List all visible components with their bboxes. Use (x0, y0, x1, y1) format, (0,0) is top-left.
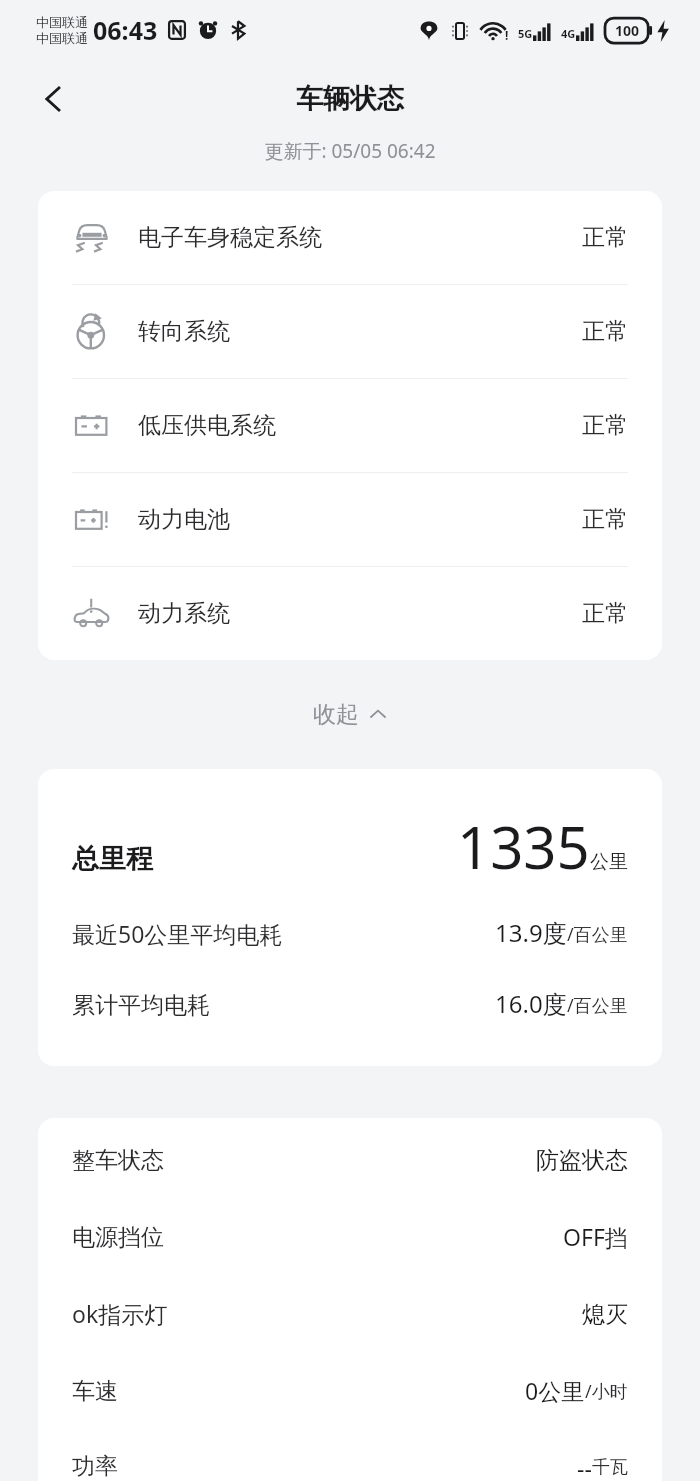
button[interactable]: ok指示灯 (72, 1298, 628, 1329)
staticText: 车辆状态 (296, 82, 404, 116)
staticText: 车速 (72, 1377, 118, 1406)
staticText: 正常 (582, 317, 628, 346)
staticText: 正常 (582, 505, 628, 534)
staticText: 熄灭 (582, 1300, 628, 1329)
staticText: 动力系统 (138, 599, 230, 628)
staticText: 总里程 (72, 842, 153, 876)
button[interactable]: Back (26, 71, 82, 127)
staticText: /百公里 (567, 922, 628, 947)
staticText: 低压供电系统 (138, 411, 276, 440)
staticText: 正常 (582, 599, 628, 628)
button[interactable]: 车速 (72, 1375, 628, 1406)
staticText: ok指示灯 (72, 1298, 168, 1329)
staticText: 06:43 (93, 13, 158, 47)
staticText: 动力电池 (138, 505, 230, 534)
staticText: 防盗状态 (536, 1146, 628, 1175)
staticText: 5G (518, 26, 533, 41)
staticText: 16.0度 (495, 987, 567, 1020)
staticText: -- (577, 1452, 592, 1481)
staticText: 正常 (582, 411, 628, 440)
staticText: 最近50公里平均电耗 (72, 918, 283, 949)
staticText: 更新于: 05/05 06:42 (0, 138, 700, 164)
staticText: /百公里 (567, 993, 628, 1018)
button[interactable]: 电子车身稳定系统 (38, 191, 662, 284)
staticText: 公里 (590, 850, 628, 874)
staticText: 100 (615, 21, 640, 40)
staticText: /小时 (585, 1379, 628, 1404)
staticText: 收起 (313, 700, 359, 729)
staticText: 1335 (457, 807, 590, 886)
staticText: 正常 (582, 223, 628, 252)
staticText: 转向系统 (138, 317, 230, 346)
button[interactable]: 低压供电系统 (38, 379, 662, 472)
staticText: 电子车身稳定系统 (138, 223, 322, 252)
button[interactable]: 转向系统 (38, 285, 662, 378)
button[interactable]: 收起 (293, 690, 407, 739)
button[interactable]: 整车状态 (72, 1146, 628, 1175)
staticText: 功率 (72, 1452, 118, 1481)
button[interactable]: 动力系统 (38, 567, 662, 660)
staticText: 千瓦 (592, 1456, 628, 1479)
button[interactable]: 动力电池 (38, 473, 662, 566)
staticText: 中国联通 (36, 14, 88, 30)
button[interactable]: 电源挡位 (72, 1221, 628, 1252)
button[interactable]: 功率 (72, 1452, 628, 1481)
staticText: 中国联通 (36, 30, 88, 46)
staticText: 4G (561, 26, 576, 41)
staticText: OFF挡 (563, 1221, 628, 1252)
staticText: 13.9度 (495, 916, 567, 949)
staticText: 0公里 (525, 1375, 585, 1406)
staticText: 整车状态 (72, 1146, 164, 1175)
staticText: 累计平均电耗 (72, 991, 210, 1020)
staticText: 电源挡位 (72, 1223, 164, 1252)
staticText: ! (505, 27, 509, 43)
